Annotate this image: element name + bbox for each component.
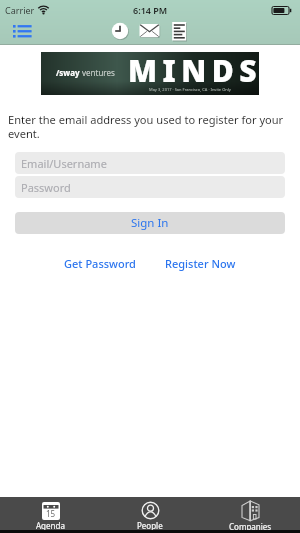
button[interactable] — [110, 21, 130, 41]
staticText: People — [137, 520, 163, 530]
button[interactable]: People — [100, 497, 200, 530]
staticText: Enter the email address you used to regi… — [8, 112, 284, 141]
staticText: May 3, 2017 · San Francisco, CA · Invite… — [149, 87, 231, 92]
button[interactable]: Companies — [200, 497, 300, 530]
staticText: Email/Username — [21, 156, 107, 171]
staticText: 15 — [46, 508, 56, 519]
staticText: Sign In — [131, 215, 169, 231]
staticText: 6:14 PM — [133, 4, 168, 16]
button[interactable] — [8, 22, 36, 42]
staticText: /sway — [56, 67, 82, 78]
staticText: Register Now — [165, 256, 236, 271]
button[interactable] — [170, 21, 188, 42]
staticText: Agenda — [36, 520, 65, 530]
button[interactable]: 15 — [0, 497, 100, 530]
button[interactable]: Sign In — [15, 212, 285, 234]
button[interactable]: Register Now — [150, 256, 250, 271]
staticText: Carrier — [5, 4, 35, 16]
staticText: ventures — [82, 67, 115, 78]
staticText: Password — [21, 180, 71, 195]
button[interactable] — [139, 23, 161, 39]
staticText: Companies — [229, 521, 272, 530]
staticText: Get Password — [64, 256, 136, 271]
button[interactable]: /sway — [41, 52, 259, 95]
button[interactable]: Email/Username — [15, 152, 285, 174]
button[interactable]: Password — [15, 176, 285, 198]
button[interactable]: Get Password — [50, 256, 150, 271]
staticText: MINDS — [128, 50, 263, 91]
